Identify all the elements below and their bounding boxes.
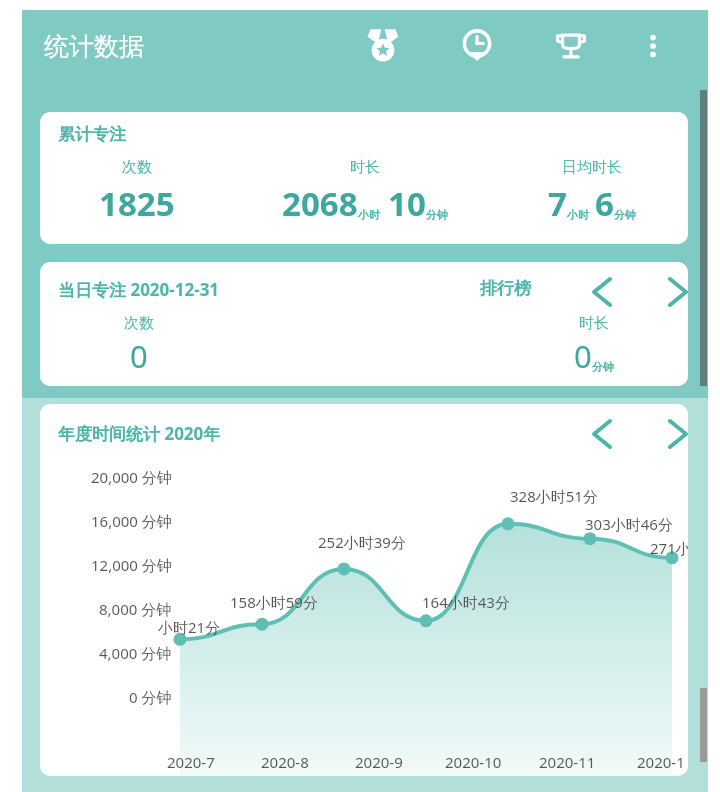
staticText: 4,000 分钟 xyxy=(99,643,172,663)
staticText: 小时 xyxy=(358,208,380,222)
staticText: 20,000 分钟 xyxy=(91,467,172,487)
button[interactable]: Next xyxy=(656,270,688,314)
staticText: 0 xyxy=(130,335,148,377)
staticText: 次数 xyxy=(122,158,152,177)
button[interactable]: Previous xyxy=(580,270,624,314)
staticText: 2020-10 xyxy=(445,752,502,772)
staticText: 2020-9 xyxy=(355,752,403,772)
staticText: 2020-8 xyxy=(261,752,309,772)
staticText: 8,000 分钟 xyxy=(99,599,172,619)
button[interactable]: 当日专注 2020-12-31 xyxy=(40,262,688,386)
staticText: 累计专注 xyxy=(58,124,126,145)
staticText: 2020-1 xyxy=(637,752,685,772)
staticText: 2020-11 xyxy=(539,752,596,772)
staticText: 分钟 xyxy=(426,208,448,222)
staticText: 6 xyxy=(595,181,614,226)
button[interactable]: Time xyxy=(456,25,498,67)
staticText: 158小时59分 xyxy=(230,592,318,612)
button[interactable]: Medal xyxy=(362,25,404,67)
staticText: 2020-7 xyxy=(167,752,215,772)
staticText: 16,000 分钟 xyxy=(91,511,172,531)
staticText: 时长 xyxy=(350,158,380,177)
staticText: 252小时39分 xyxy=(318,532,406,552)
staticText: 1825 xyxy=(99,181,175,226)
staticText: 2068 xyxy=(282,181,358,226)
button[interactable]: More options xyxy=(632,25,674,67)
staticText: 271小时21 xyxy=(650,538,688,558)
staticText: 0 分钟 xyxy=(129,687,172,707)
staticText: 12,000 分钟 xyxy=(91,555,172,575)
staticText: 当日专注 2020-12-31 xyxy=(58,278,220,301)
staticText: 时长 xyxy=(579,314,609,333)
staticText: 303小时46分 xyxy=(585,514,673,534)
button[interactable]: Trophy xyxy=(550,25,592,67)
staticText: 分钟 xyxy=(592,360,614,374)
staticText: 328小时51分 xyxy=(510,486,598,506)
staticText: 小时 xyxy=(567,208,589,222)
staticText: 7 xyxy=(548,181,567,226)
button[interactable]: 年度时间统计 2020年 xyxy=(40,404,688,776)
staticText: 日均时长 xyxy=(562,158,622,177)
staticText: 年度时间统计 2020年 xyxy=(58,422,221,445)
staticText: 164小时43分 xyxy=(422,592,510,612)
button[interactable]: 累计专注 xyxy=(40,112,688,244)
staticText: 统计数据 xyxy=(44,31,144,62)
staticText: 次数 xyxy=(124,314,154,333)
button[interactable]: Previous year xyxy=(580,412,624,456)
staticText: 0 xyxy=(574,335,592,377)
staticText: 分钟 xyxy=(614,208,636,222)
staticText: 10 xyxy=(388,181,426,226)
staticText: 排行榜 xyxy=(480,278,531,299)
button[interactable]: Next year xyxy=(656,412,688,456)
staticText: 小时21分 xyxy=(158,617,221,637)
